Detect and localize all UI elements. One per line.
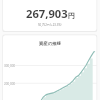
staticText: 200,000	[4, 82, 16, 86]
button[interactable]: 資産の推移	[3, 35, 97, 100]
staticText: 50,752円 (+23.3%)	[38, 23, 62, 27]
staticText: 資産の推移	[3, 41, 97, 47]
other: Asset history chart	[3, 50, 97, 100]
staticText: 300,000	[4, 64, 16, 68]
staticText: 267,903	[26, 6, 68, 21]
staticText: 円	[68, 11, 75, 20]
button[interactable]: 267,903	[3, 0, 97, 31]
